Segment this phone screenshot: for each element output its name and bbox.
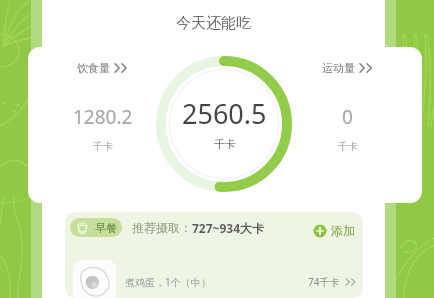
button[interactable]: 运动量 bbox=[307, 61, 388, 153]
staticText: 727~934大卡 bbox=[192, 220, 265, 236]
staticText: 2560.5 bbox=[182, 95, 267, 132]
staticText: 添加 bbox=[331, 223, 355, 238]
staticText: 1280.2 bbox=[73, 104, 133, 130]
staticText: 今天还能吃 bbox=[176, 14, 251, 33]
staticText: 推荐摄取： bbox=[132, 220, 192, 235]
staticText: 千卡 bbox=[214, 137, 236, 151]
staticText: 千卡 bbox=[338, 140, 358, 153]
staticText: 运动量 bbox=[322, 61, 355, 75]
staticText: 千卡 bbox=[93, 140, 113, 153]
staticText: 早餐 bbox=[95, 221, 117, 235]
staticText: 0 bbox=[342, 104, 353, 130]
button[interactable]: 煮鸡蛋，1个（中） bbox=[125, 260, 363, 298]
button[interactable]: 早餐 bbox=[70, 218, 122, 237]
staticText: 煮鸡蛋，1个（中） bbox=[125, 275, 211, 289]
button[interactable]: 添加 bbox=[313, 223, 355, 238]
staticText: 74千卡 bbox=[308, 275, 340, 289]
button[interactable]: 饮食量 bbox=[62, 61, 143, 153]
staticText: 饮食量 bbox=[77, 61, 110, 75]
